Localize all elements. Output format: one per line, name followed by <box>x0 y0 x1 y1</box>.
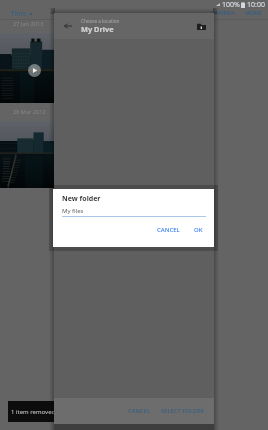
button[interactable]: 1 item removed <box>8 401 78 422</box>
staticText: 1 item removed <box>11 408 56 416</box>
staticText: 100% <box>222 0 240 9</box>
button[interactable]: OK <box>191 223 206 237</box>
button[interactable]: Create new folder <box>192 17 210 35</box>
button[interactable]: CANCEL <box>124 403 154 419</box>
button[interactable]: CANCEL <box>154 223 183 237</box>
staticText: 26 Mar 2012 <box>13 108 46 116</box>
button[interactable]: SELECT FOLDER <box>157 403 209 419</box>
staticText: My files <box>62 207 84 215</box>
staticText: 10:00 <box>247 0 265 9</box>
staticText: Choose a location <box>81 18 120 24</box>
button[interactable]: CAMERA <box>209 7 237 19</box>
button[interactable]: Navigate up <box>58 16 78 36</box>
button[interactable]: MORE <box>243 7 264 19</box>
staticText: My Drive <box>81 24 114 34</box>
staticText: New folder <box>62 194 101 204</box>
staticText: 27 Jan 2013 <box>13 20 44 28</box>
staticText: Time <box>11 9 27 18</box>
button[interactable]: Time <box>0 9 39 18</box>
button[interactable]: Play video <box>28 64 41 77</box>
